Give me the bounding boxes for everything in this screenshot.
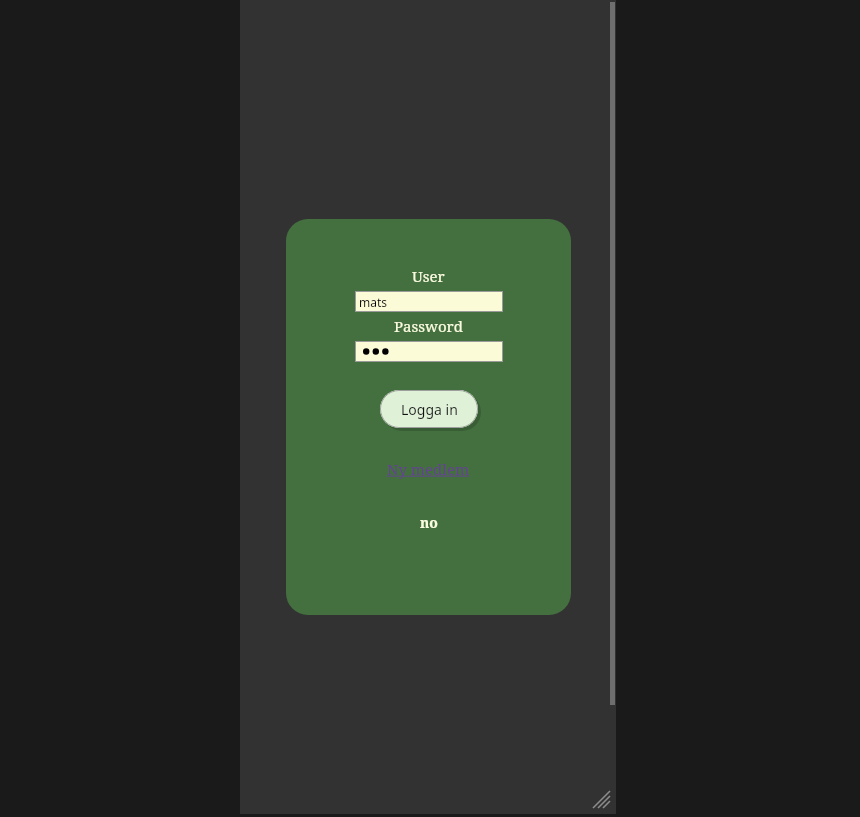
button[interactable]: mats [355, 291, 503, 312]
staticText: Ny medlem [387, 459, 470, 479]
staticText: mats [359, 294, 388, 310]
staticText: Password [394, 316, 463, 336]
staticText: User [412, 266, 445, 286]
staticText: Logga in [401, 400, 458, 419]
staticText: no [420, 513, 438, 532]
other: Resize [590, 788, 610, 808]
button[interactable]: Logga in [380, 390, 478, 428]
button[interactable] [355, 341, 503, 362]
button[interactable]: Ny medlem [383, 457, 474, 481]
